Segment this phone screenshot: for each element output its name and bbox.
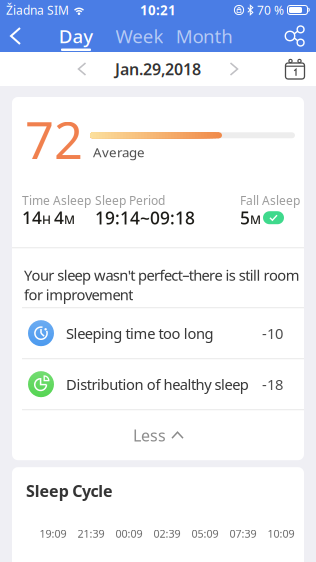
- staticText: 19:14~09:18: [95, 206, 195, 229]
- button[interactable]: Week: [107, 20, 172, 52]
- staticText: Žiadna SIM: [6, 2, 69, 18]
- staticText: -10: [262, 323, 283, 343]
- staticText: Less: [133, 425, 166, 446]
- staticText: 72: [25, 106, 83, 173]
- staticText: 70 %: [257, 2, 284, 18]
- staticText: 02:39: [153, 526, 180, 541]
- staticText: 21:39: [77, 526, 104, 541]
- staticText: Sleep Cycle: [26, 480, 113, 501]
- staticText: 05:09: [191, 526, 218, 541]
- button[interactable]: Share: [284, 20, 316, 52]
- button[interactable]: Next day: [225, 54, 243, 84]
- staticText: -18: [262, 374, 283, 394]
- staticText: 19:09: [39, 526, 66, 541]
- staticText: 00:09: [115, 526, 142, 541]
- button[interactable]: Month: [172, 20, 237, 52]
- staticText: Sleep Period: [95, 192, 165, 208]
- staticText: Sleeping time too long: [66, 323, 214, 343]
- staticText: Time Asleep: [22, 192, 91, 208]
- staticText: 10:21: [140, 1, 176, 19]
- button[interactable]: Previous day: [73, 54, 91, 84]
- button[interactable]: Back: [0, 20, 28, 52]
- staticText: 10:09: [267, 526, 294, 541]
- staticText: Your sleep wasn't perfect–there is still…: [24, 265, 300, 304]
- staticText: Day: [59, 24, 93, 48]
- staticText: Fall Asleep: [240, 192, 300, 208]
- staticText: 5M: [240, 206, 261, 229]
- button[interactable]: Less: [12, 410, 304, 460]
- staticText: Week: [116, 24, 163, 48]
- staticText: Distribution of healthy sleep: [66, 374, 249, 394]
- staticText: Average: [93, 143, 145, 161]
- staticText: Jan.29,2018: [115, 58, 201, 80]
- button[interactable]: Calendar: [285, 58, 316, 79]
- staticText: 07:39: [229, 526, 256, 541]
- staticText: Month: [176, 24, 233, 48]
- staticText: 14H 4M: [22, 206, 75, 229]
- button[interactable]: Day: [45, 20, 107, 52]
